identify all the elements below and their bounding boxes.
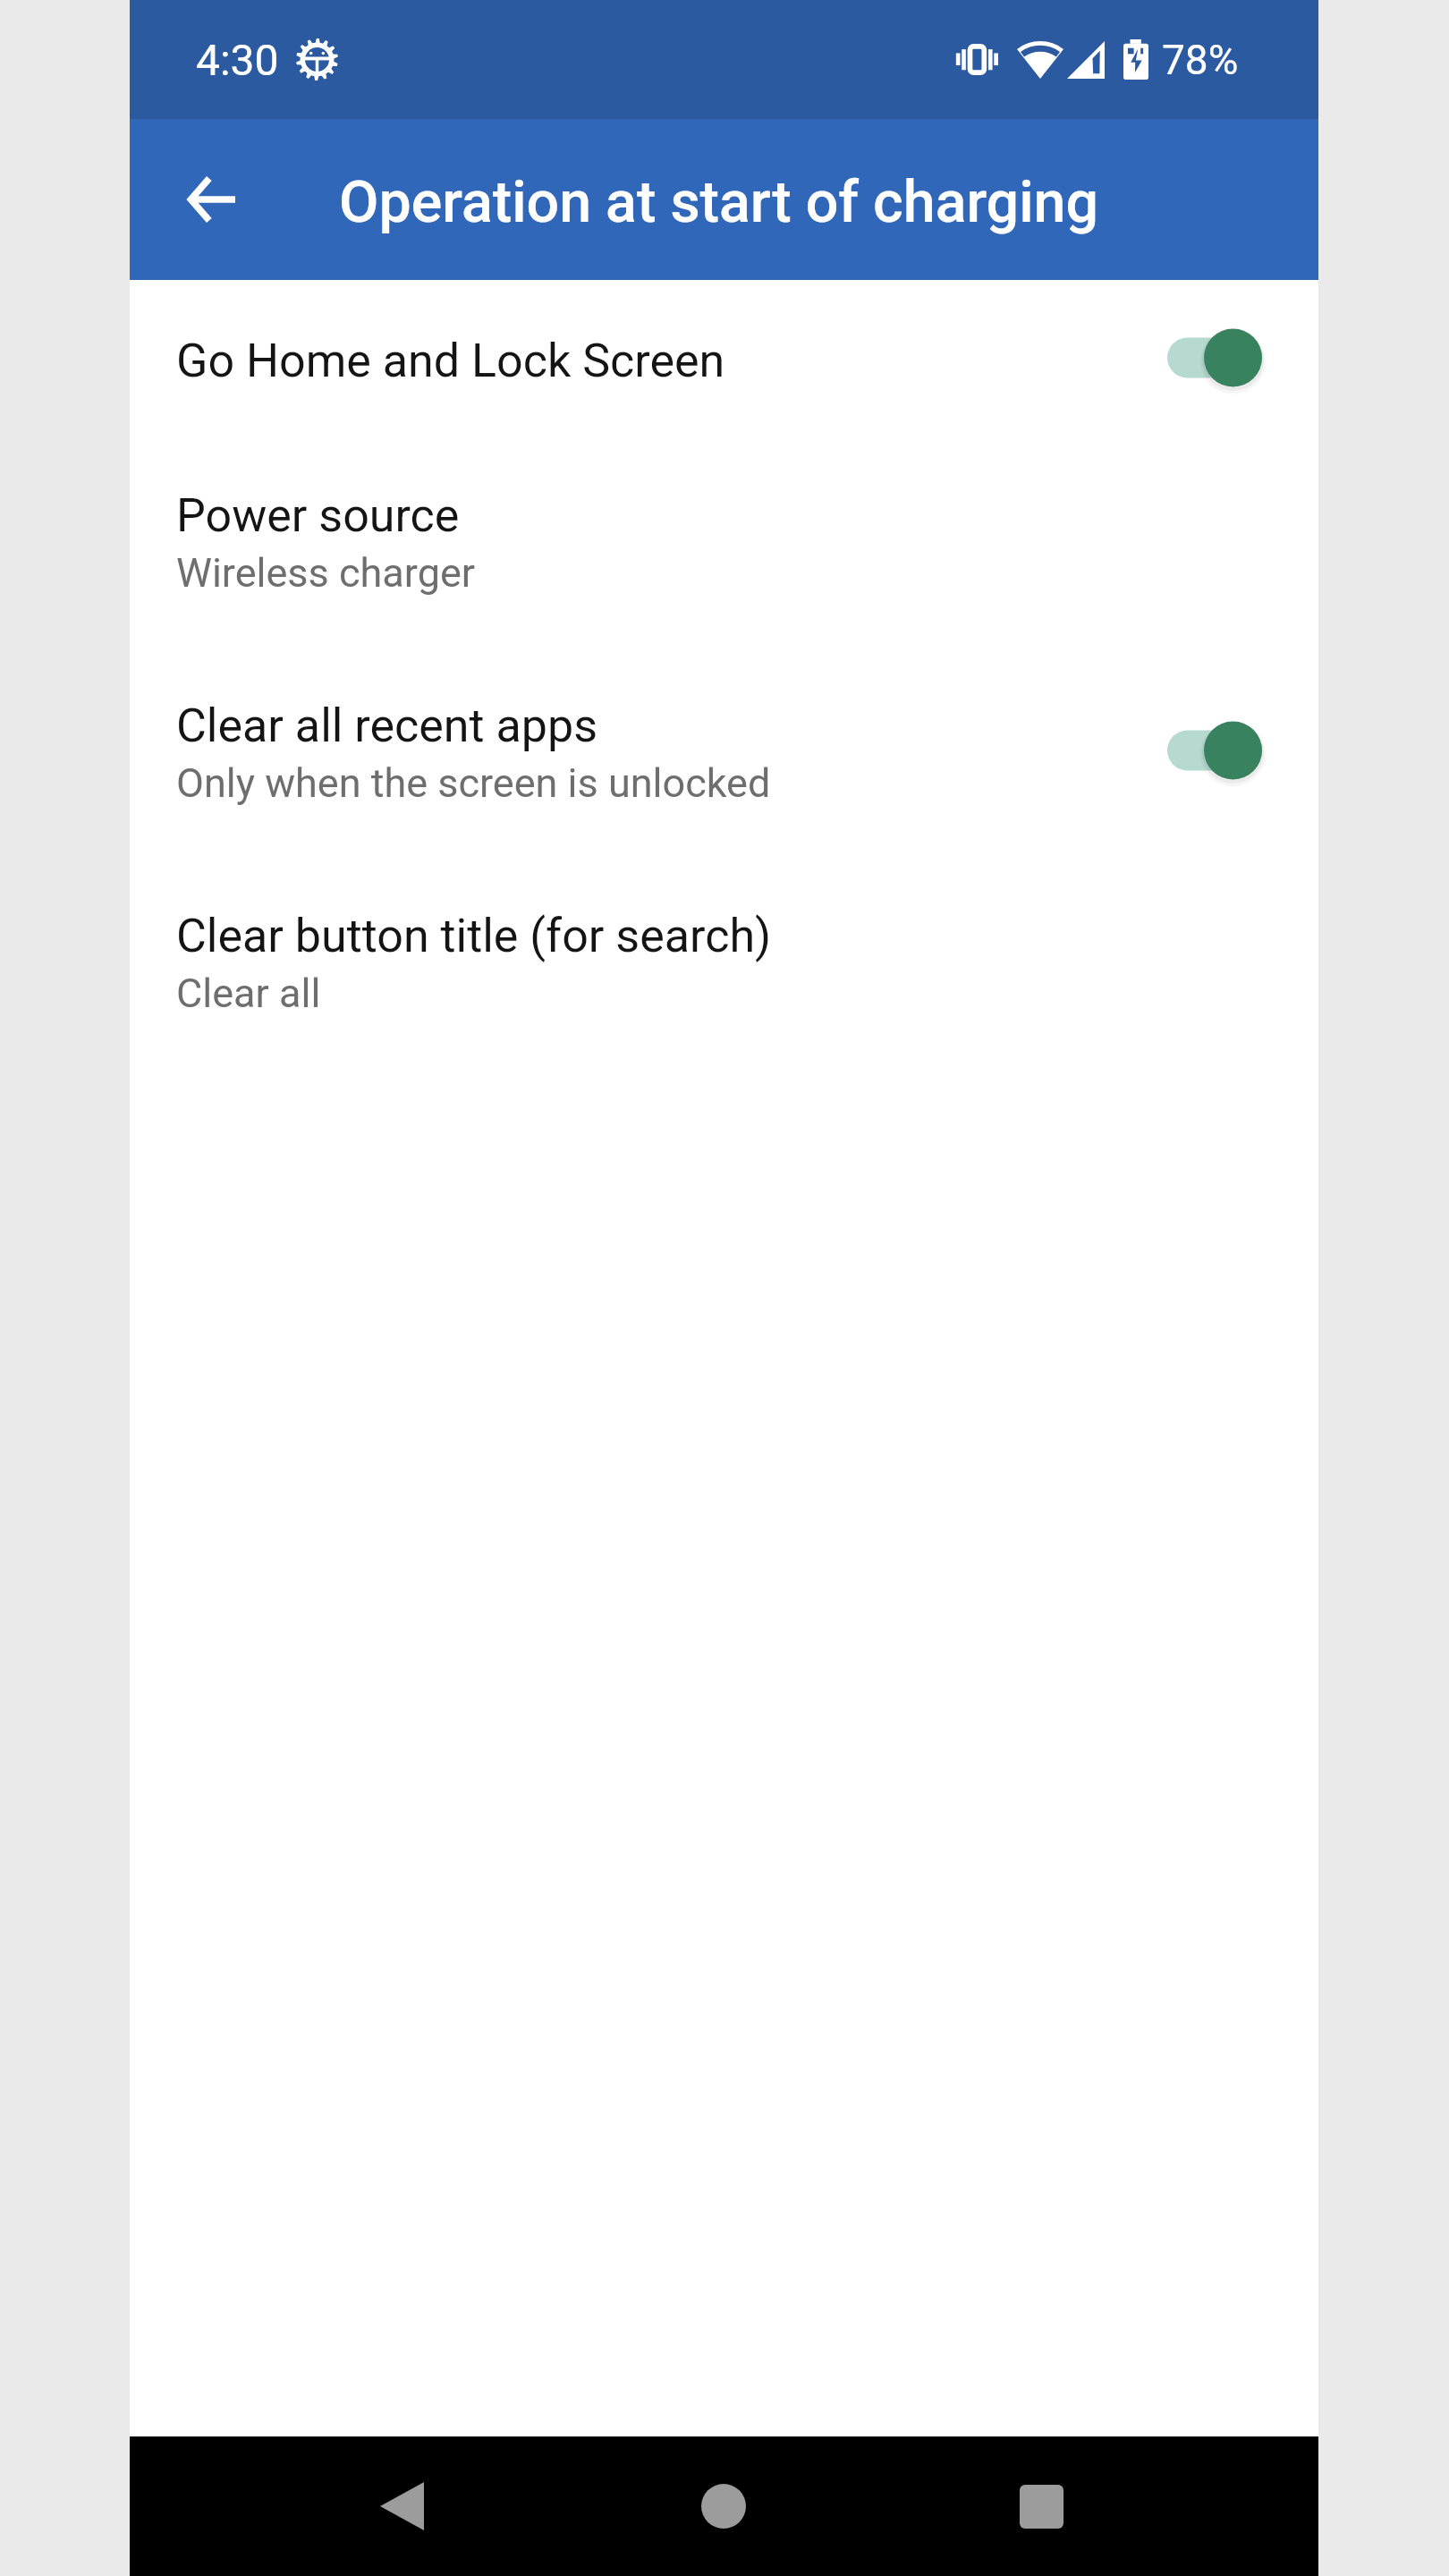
button[interactable]: Go Home and Lock Screen, on: [1164, 326, 1262, 389]
button[interactable]: Home: [670, 2453, 777, 2560]
staticText: Wireless charger: [176, 549, 476, 597]
staticText: Power source: [176, 488, 460, 543]
staticText: Clear button title (for search): [176, 909, 772, 963]
button[interactable]: Power source: [130, 437, 1318, 648]
staticText: 78%: [1162, 36, 1239, 84]
button[interactable]: Navigate up: [154, 143, 267, 256]
staticText: Go Home and Lock Screen: [176, 334, 725, 388]
button[interactable]: Clear button title (for search): [130, 858, 1318, 1068]
button[interactable]: Back: [348, 2453, 455, 2560]
staticText: 4:30: [196, 35, 279, 85]
staticText: Operation at start of charging: [339, 168, 1099, 236]
staticText: Only when the screen is unlocked: [176, 759, 771, 807]
button[interactable]: Clear all recent apps, on: [1164, 719, 1262, 782]
button[interactable]: Clear all recent apps: [130, 648, 1318, 858]
button[interactable]: Recent apps: [987, 2453, 1095, 2560]
button[interactable]: Go Home and Lock Screen: [130, 283, 1318, 437]
staticText: Clear all recent apps: [176, 699, 597, 753]
staticText: Clear all: [176, 970, 321, 1017]
